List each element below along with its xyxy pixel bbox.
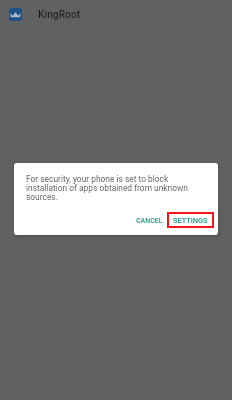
staticText: KingRoot <box>38 8 81 20</box>
staticText: For security, your phone is set to block… <box>26 174 208 202</box>
staticText: CANCEL <box>136 217 163 225</box>
button[interactable]: CANCEL <box>128 210 167 231</box>
staticText: SETTINGS <box>173 216 208 225</box>
button[interactable]: SETTINGS <box>167 212 214 228</box>
button[interactable]: KingRoot app icon <box>9 8 22 21</box>
